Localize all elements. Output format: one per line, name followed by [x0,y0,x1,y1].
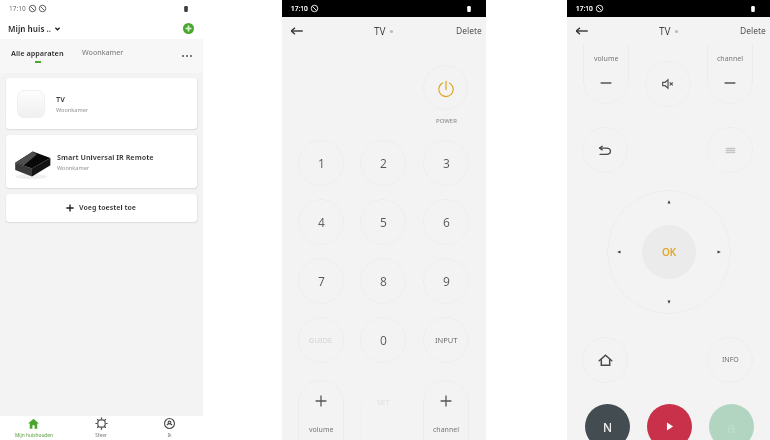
staticText: 7 [318,273,325,289]
button[interactable]: 8 [360,258,406,304]
staticText: 1 [318,155,325,171]
staticText: Ik [167,432,172,439]
button[interactable]: OK [642,225,696,279]
staticText: channel [433,425,460,435]
staticText: Delete [740,25,766,37]
button[interactable]: Smart Universal IR Remote [6,135,197,188]
staticText: Alle apparaten [11,48,64,58]
button[interactable]: Terug [288,22,306,40]
staticText: 5 [380,214,387,230]
button[interactable]: Delete [734,25,770,37]
button[interactable]: Mijn huis .. [8,23,61,34]
button[interactable] [645,61,691,107]
staticText: 2 [380,155,387,171]
button[interactable]: TV [374,24,394,38]
button[interactable] [582,127,628,173]
button[interactable]: volume [298,380,344,440]
button[interactable]: INPUT [423,317,469,363]
button[interactable]: 7 [298,258,344,304]
staticText: Woonkamer [56,106,89,114]
staticText: OK [662,245,677,259]
button[interactable]: Mijn huishouden [0,416,67,440]
button[interactable]: Meer [179,48,195,64]
button[interactable]: TV [6,78,197,129]
staticText: 8 [380,273,387,289]
staticText: INFO [722,355,739,365]
staticText: 17:10 [291,4,308,13]
button[interactable]: 6 [423,199,469,245]
staticText: Smart Universal IR Remote [57,152,154,162]
staticText: Delete [456,25,482,37]
button[interactable]: a [709,404,754,440]
staticText: 6 [443,214,450,230]
button[interactable]: GUIDE [298,317,344,363]
button[interactable] [647,404,692,440]
staticText: volume [309,425,334,435]
staticText: TV [374,24,386,38]
button[interactable]: D-pad [607,190,731,314]
staticText: Mijn huishouden [15,432,53,439]
button[interactable]: 2 [360,140,406,186]
staticText: channel [717,54,744,64]
button[interactable] [423,65,468,110]
staticText: Woonkamer [57,164,90,172]
staticText: volume [594,54,619,64]
button[interactable]: Sfeer [67,416,135,440]
staticText: Mijn huis .. [8,23,51,34]
button[interactable]: TV [659,24,679,38]
staticText: SET [377,397,390,407]
button[interactable]: N [585,404,630,440]
staticText: TV [659,24,671,38]
button[interactable]: volume [583,44,629,104]
staticText: POWER [436,117,457,125]
staticText: GUIDE [309,335,333,345]
button[interactable]: Alle apparaten [11,48,64,63]
button[interactable]: 3 [423,140,469,186]
staticText: Sfeer [95,432,107,439]
staticText: 17:10 [9,4,26,13]
staticText: 0 [380,332,387,348]
button[interactable]: Terug [573,22,591,40]
button[interactable]: Woonkamer [82,47,124,63]
button[interactable]: Voeg toestel toe [6,194,197,222]
staticText: INPUT [435,335,458,345]
button[interactable]: channel [423,380,469,440]
button[interactable]: 0 [360,317,406,363]
button[interactable]: INFO [707,337,753,383]
button[interactable]: channel [707,44,753,104]
button[interactable]: 4 [298,199,344,245]
staticText: 9 [443,273,450,289]
staticText: TV [56,94,65,104]
button[interactable]: 9 [423,258,469,304]
staticText: 4 [318,214,325,230]
button[interactable]: Ik [135,416,203,440]
staticText: Voeg toestel toe [79,203,137,213]
staticText: N [603,419,613,435]
button[interactable]: Toevoegen [183,23,194,34]
button[interactable]: Delete [450,25,486,37]
staticText: 17:10 [576,4,593,13]
button[interactable]: 1 [298,140,344,186]
button[interactable] [582,337,628,383]
button[interactable] [707,127,753,173]
staticText: a [727,417,736,437]
staticText: 3 [443,155,450,171]
button[interactable]: 5 [360,199,406,245]
